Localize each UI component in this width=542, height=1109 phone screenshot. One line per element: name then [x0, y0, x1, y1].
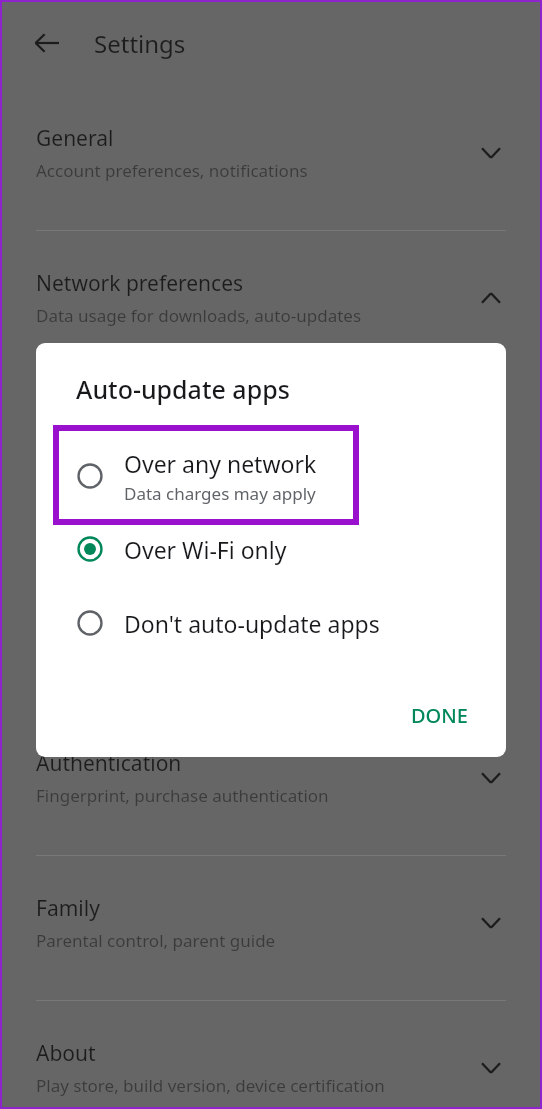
button[interactable]: General: [0, 122, 542, 184]
button[interactable]: Network preferences: [0, 267, 542, 329]
button[interactable]: Over Wi-Fi only: [36, 518, 506, 580]
staticText: Play store, build version, device certif…: [36, 1074, 385, 1097]
staticText: General: [36, 124, 114, 153]
staticText: Auto-update apps: [76, 372, 290, 406]
button[interactable]: Don't auto-update apps: [36, 592, 506, 654]
staticText: Parental control, parent guide: [36, 929, 276, 952]
staticText: Family: [36, 894, 100, 923]
button[interactable]: DONE: [397, 692, 482, 739]
staticText: Don't auto-update apps: [124, 608, 380, 639]
staticText: Over Wi-Fi only: [124, 534, 287, 565]
button[interactable]: Over any network: [36, 434, 506, 518]
staticText: Authentication: [36, 749, 182, 778]
button[interactable]: Family: [0, 892, 542, 954]
staticText: DONE: [411, 702, 468, 729]
staticText: Over any network: [124, 448, 317, 479]
button[interactable]: About: [0, 1037, 542, 1099]
staticText: Fingerprint, purchase authentication: [36, 784, 329, 807]
staticText: Data charges may apply: [124, 482, 316, 505]
staticText: Data usage for downloads, auto-updates: [36, 304, 362, 327]
staticText: Account preferences, notifications: [36, 159, 308, 182]
button[interactable]: Back: [22, 18, 72, 68]
button[interactable]: Authentication: [0, 747, 542, 809]
staticText: Network preferences: [36, 269, 244, 298]
staticText: Settings: [94, 27, 186, 60]
staticText: About: [36, 1039, 96, 1068]
